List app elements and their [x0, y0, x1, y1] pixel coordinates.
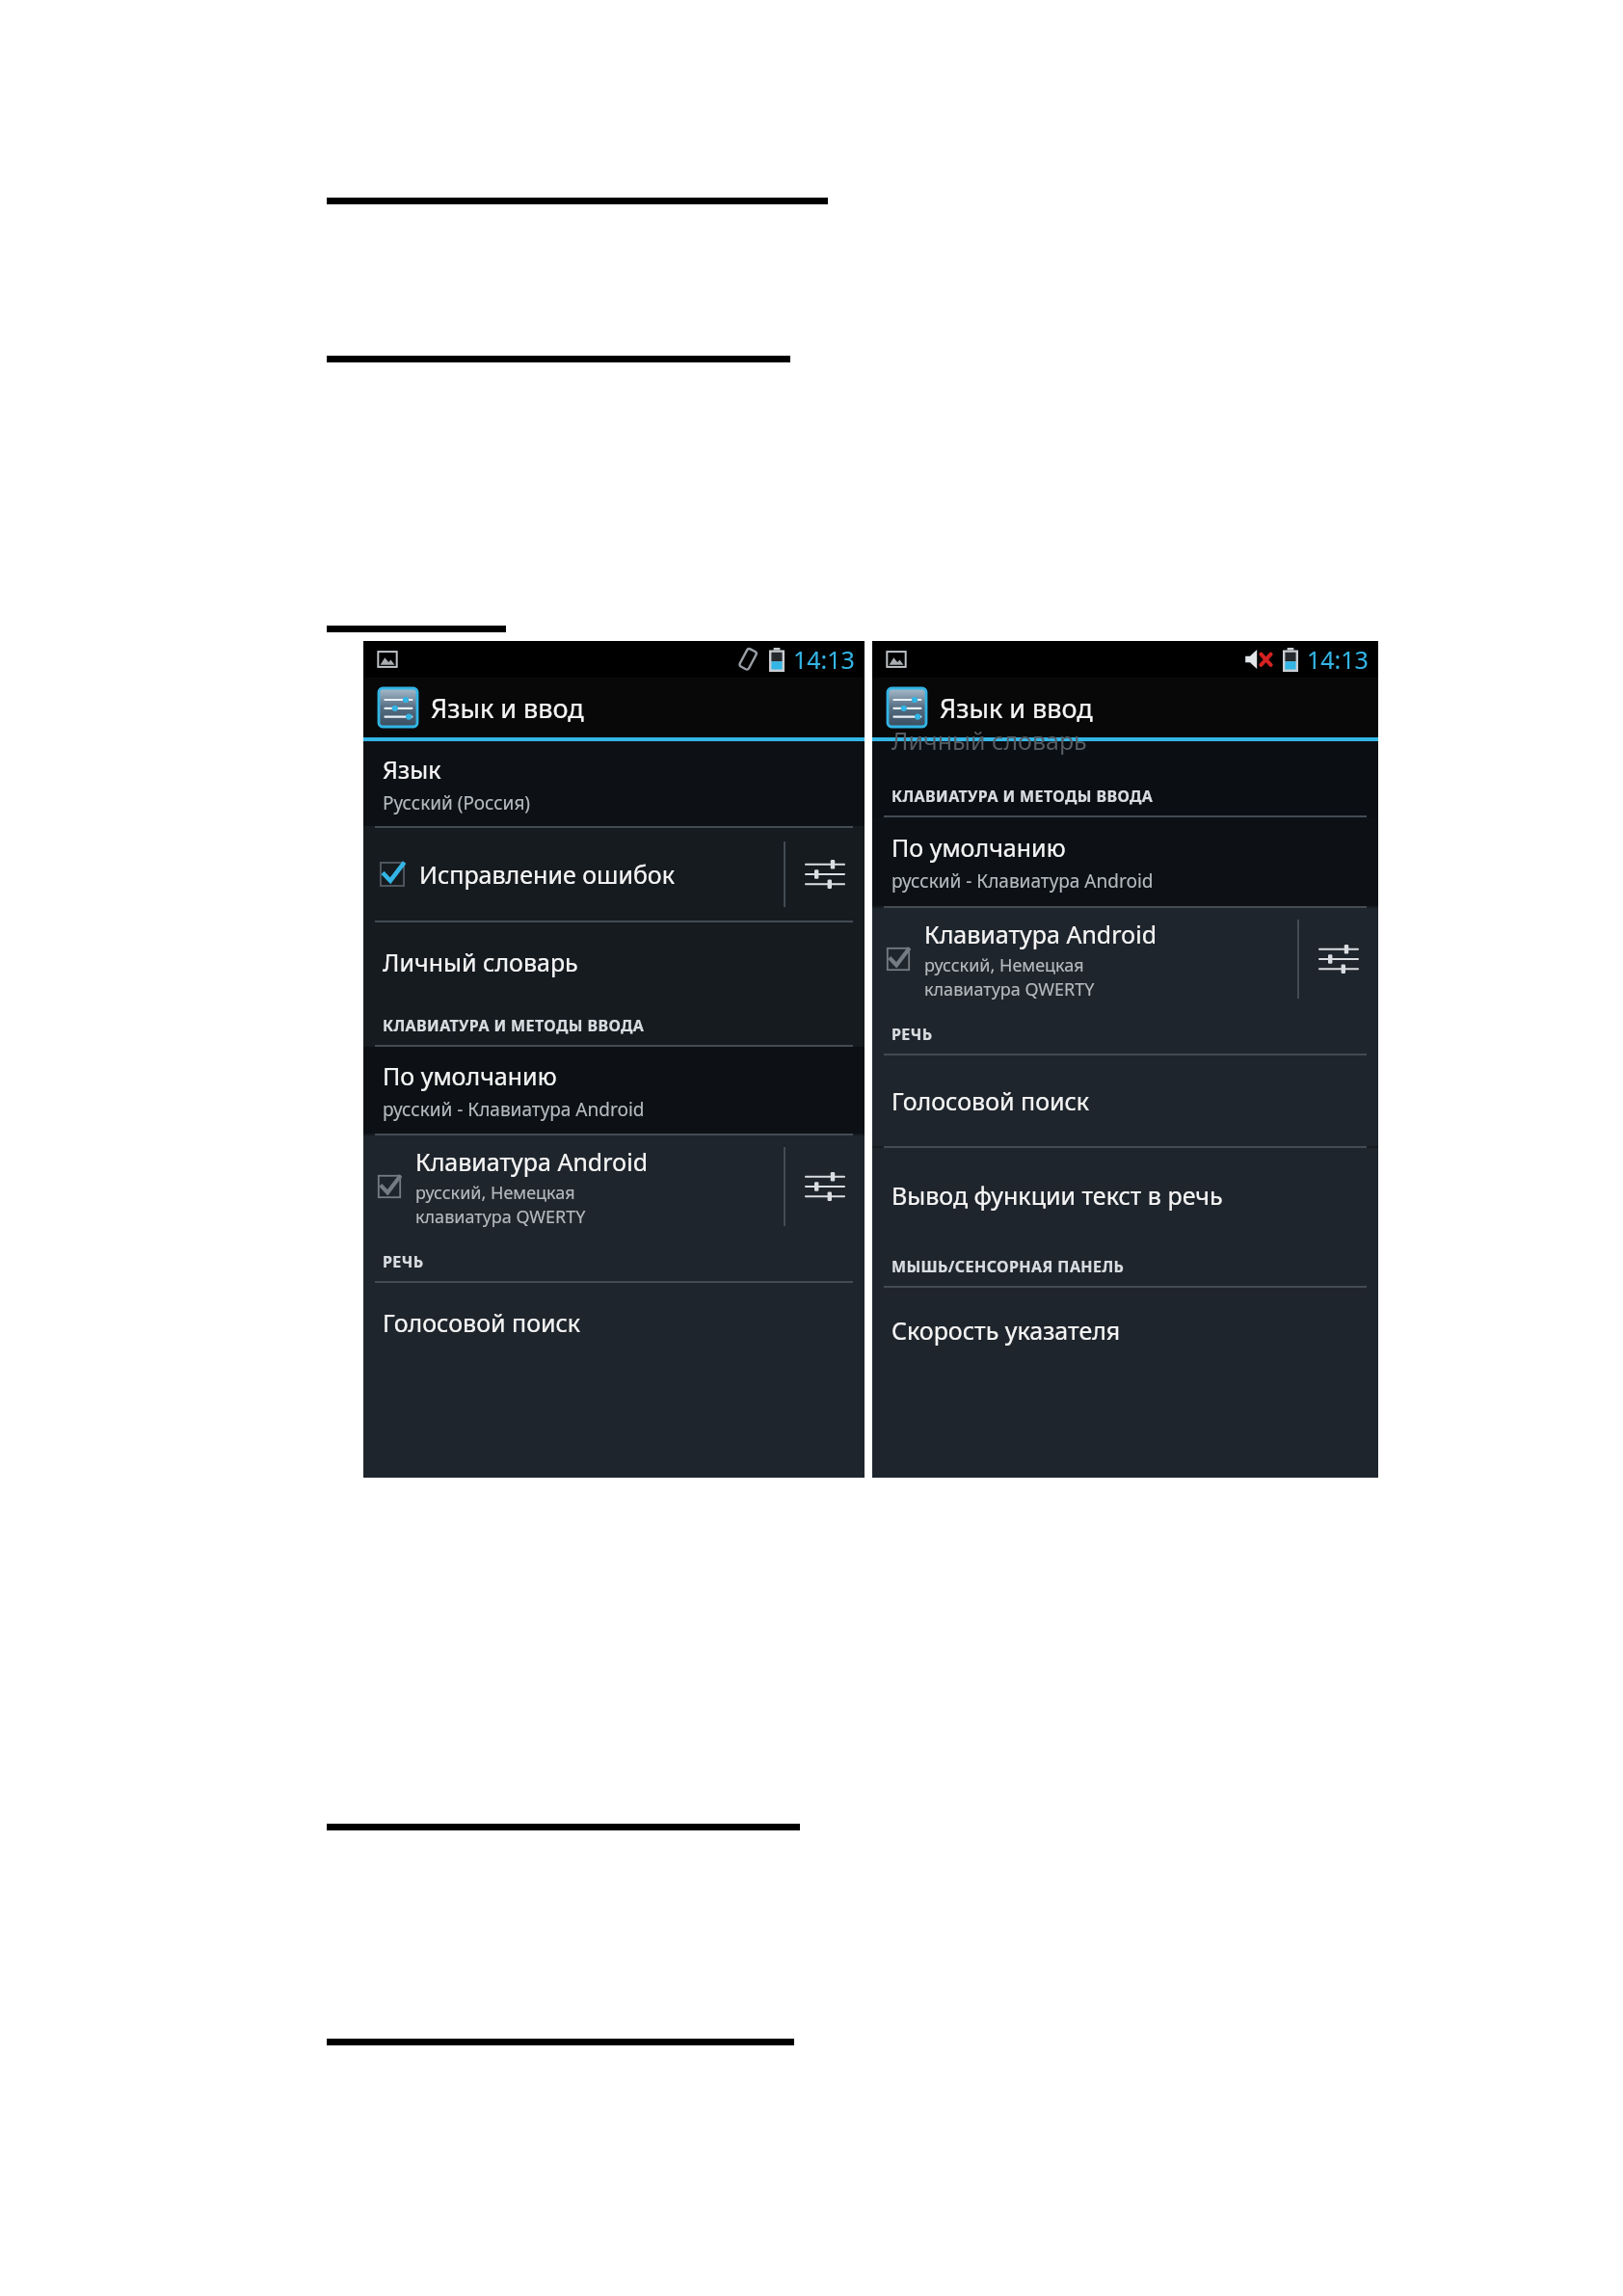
staticText: РЕЧЬ	[383, 1251, 424, 1272]
staticText: КЛАВИАТУРА И МЕТОДЫ ВВОДА	[891, 786, 1154, 807]
staticText: Личный словарь	[891, 724, 1087, 755]
staticText: 14:13	[793, 643, 855, 676]
staticText: русский, Немецкая	[924, 953, 1084, 977]
button[interactable]: Скорость указателя	[872, 1288, 1378, 1373]
button[interactable]: Язык	[363, 741, 865, 826]
button[interactable]: Клавиатура Android	[363, 1135, 784, 1238]
staticText: Язык	[383, 753, 441, 786]
staticText: 14:13	[1307, 643, 1369, 676]
button[interactable]: Настройки исправления ошибок	[785, 828, 865, 921]
button[interactable]: Личный словарь	[363, 922, 865, 1001]
button[interactable]: Голосовой поиск	[363, 1283, 865, 1362]
staticText: Клавиатура Android	[415, 1145, 649, 1178]
button[interactable]: Язык и ввод	[363, 678, 865, 737]
button[interactable]: Исправление ошибок	[363, 828, 784, 921]
staticText: клавиатура QWERTY	[924, 977, 1095, 1001]
staticText: Голосовой поиск	[891, 1084, 1090, 1117]
staticText: МЫШЬ/СЕНСОРНАЯ ПАНЕЛЬ	[891, 1256, 1125, 1277]
staticText: КЛАВИАТУРА И МЕТОДЫ ВВОДА	[383, 1015, 645, 1036]
button[interactable]: Настройки клавиатуры Android	[785, 1135, 865, 1238]
staticText: Исправление ошибок	[419, 858, 675, 891]
staticText: РЕЧЬ	[891, 1024, 933, 1045]
button[interactable]: Личный словарь	[872, 741, 1378, 772]
button[interactable]: Настройки клавиатуры Android	[1299, 908, 1378, 1010]
button[interactable]: Язык и ввод	[872, 678, 1378, 737]
staticText: Русский (Россия)	[383, 790, 531, 815]
button[interactable]: Вывод функции текст в речь	[872, 1148, 1378, 1242]
staticText: Клавиатура Android	[924, 918, 1157, 950]
staticText: Личный словарь	[383, 946, 578, 978]
staticText: русский, Немецкая	[415, 1181, 575, 1205]
staticText: клавиатура QWERTY	[415, 1205, 586, 1229]
staticText: По умолчанию	[891, 831, 1066, 864]
button[interactable]: По умолчанию	[363, 1047, 865, 1134]
staticText: Вывод функции текст в речь	[891, 1179, 1223, 1212]
button[interactable]: По умолчанию	[872, 817, 1378, 906]
button[interactable]: Голосовой поиск	[872, 1055, 1378, 1146]
staticText: русский - Клавиатура Android	[891, 868, 1154, 894]
staticText: Язык и ввод	[431, 690, 584, 726]
staticText: По умолчанию	[383, 1059, 557, 1092]
staticText: Язык и ввод	[940, 690, 1093, 726]
staticText: русский - Клавиатура Android	[383, 1097, 645, 1122]
button[interactable]: Клавиатура Android	[872, 908, 1297, 1010]
staticText: Скорость указателя	[891, 1314, 1121, 1347]
staticText: Голосовой поиск	[383, 1306, 581, 1339]
